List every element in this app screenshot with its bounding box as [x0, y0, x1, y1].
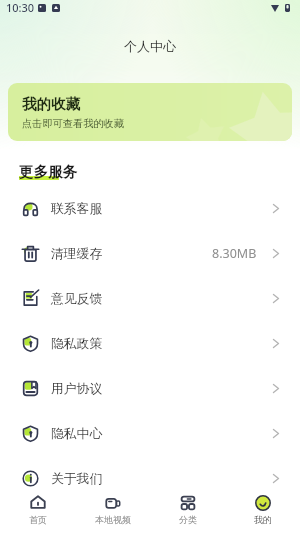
staticText: 首页	[29, 514, 47, 525]
button[interactable]: 隐私政策	[0, 321, 300, 366]
button[interactable]: 清理缓存	[0, 231, 300, 276]
staticText: 10:30	[6, 0, 35, 15]
staticText: 隐私中心	[51, 426, 103, 442]
button[interactable]: 本地视频	[75, 487, 150, 533]
staticText: 更多服务	[19, 163, 78, 179]
staticText: 关于我们	[51, 471, 103, 487]
staticText: 8.30MB	[212, 245, 257, 262]
button[interactable]: 用户协议	[0, 366, 300, 411]
staticText: 我的收藏	[22, 95, 80, 113]
staticText: 本地视频	[95, 514, 131, 525]
staticText: 我的	[254, 514, 272, 525]
staticText: 清理缓存	[51, 246, 103, 262]
staticText: 个人中心	[124, 38, 176, 54]
button[interactable]: 我的收藏	[8, 83, 292, 141]
staticText: 隐私政策	[51, 336, 103, 352]
button[interactable]: 首页	[0, 487, 75, 533]
button[interactable]: 意见反馈	[0, 276, 300, 321]
button[interactable]: 分类	[150, 487, 225, 533]
button[interactable]: 联系客服	[0, 186, 300, 231]
button[interactable]: 关于我们	[0, 456, 300, 501]
button[interactable]: 隐私中心	[0, 411, 300, 456]
staticText: 用户协议	[51, 381, 103, 397]
staticText: 分类	[179, 514, 197, 525]
staticText: 点击即可查看我的收藏	[22, 117, 124, 130]
button[interactable]: 我的	[225, 487, 300, 533]
staticText: 意见反馈	[51, 291, 103, 307]
staticText: 联系客服	[51, 201, 103, 217]
